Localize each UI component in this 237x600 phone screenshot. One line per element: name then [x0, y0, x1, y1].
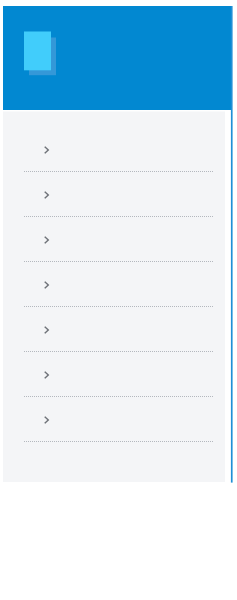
- button[interactable]: Item 1: [3, 127, 225, 172]
- button[interactable]: Item 3: [3, 217, 225, 262]
- button[interactable]: Item 2: [3, 172, 225, 217]
- button[interactable]: Item 4: [3, 262, 225, 307]
- button[interactable]: Item 7: [3, 397, 225, 442]
- button[interactable]: Item 5: [3, 307, 225, 352]
- button[interactable]: Item 6: [3, 352, 225, 397]
